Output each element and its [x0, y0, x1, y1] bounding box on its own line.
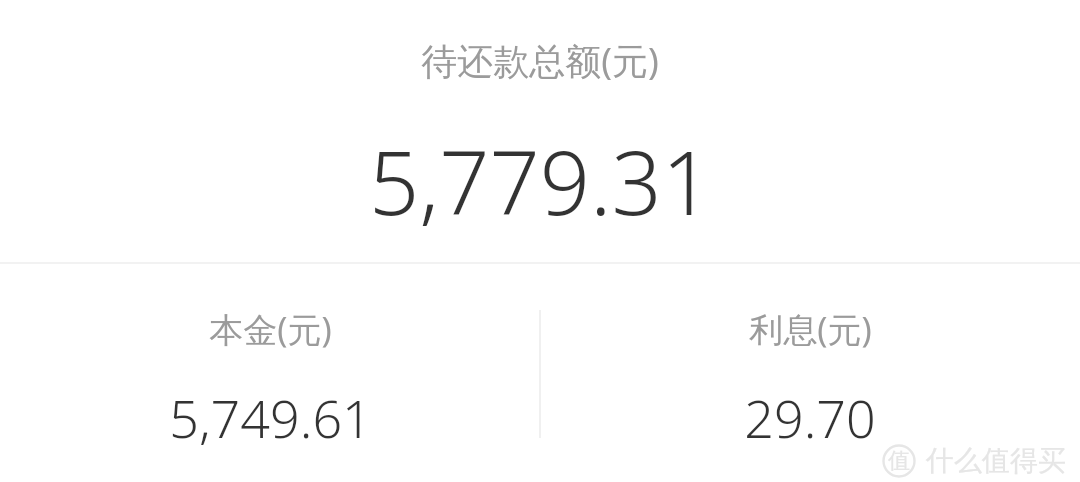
button[interactable]: 本金(元) — [0, 264, 540, 482]
staticText: 本金(元) — [209, 306, 332, 352]
staticText: 利息(元) — [749, 306, 872, 352]
staticText: 值 — [888, 447, 910, 475]
other: 什么值得买 logo — [882, 444, 916, 478]
button[interactable]: 待还款总额(元) — [0, 0, 1080, 262]
staticText: 5,749.61 — [169, 382, 372, 453]
button[interactable]: 利息(元) — [540, 264, 1080, 482]
staticText: 什么值得买 — [926, 443, 1066, 478]
staticText: 5,779.31 — [369, 121, 712, 241]
staticText: 待还款总额(元) — [421, 36, 659, 85]
staticText: 29.70 — [744, 382, 876, 453]
